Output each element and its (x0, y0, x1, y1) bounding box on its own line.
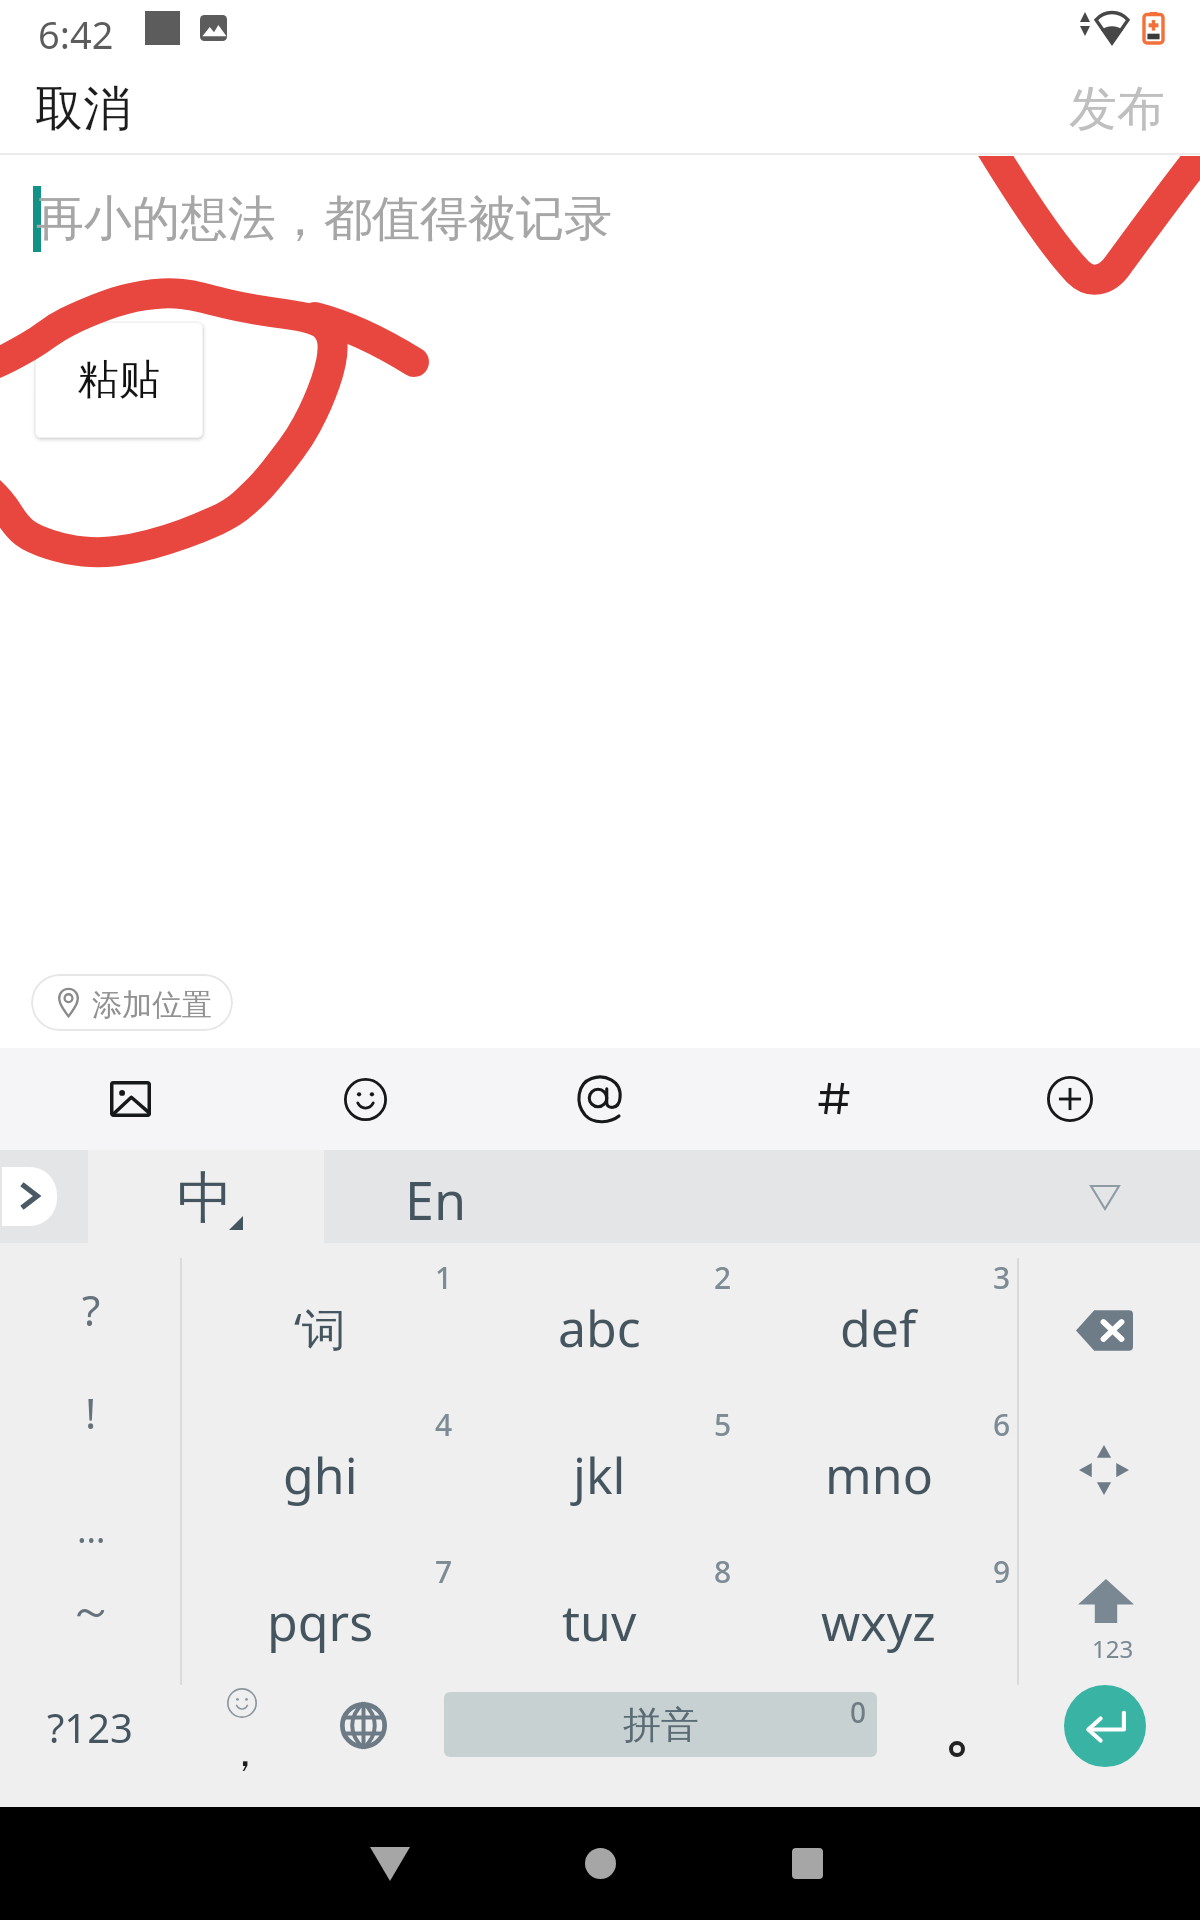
button[interactable]: Enter (1064, 1685, 1146, 1767)
staticText: wxyz (821, 1588, 936, 1656)
button[interactable]: Recents (747, 1807, 867, 1920)
button[interactable]: Switch language (305, 1684, 421, 1807)
button[interactable]: ‘词 (180, 1254, 460, 1401)
staticText: 再小的想法，都值得被记录 (36, 189, 612, 249)
staticText: … (77, 1505, 106, 1554)
staticText: 2 (714, 1257, 732, 1298)
button[interactable]: ?123 (10, 1684, 180, 1807)
staticText: ～ (68, 1582, 114, 1640)
button[interactable]: Comma and emoji (182, 1684, 302, 1807)
staticText: ? (82, 1281, 101, 1338)
button[interactable]: Expand keyboard (2, 1167, 57, 1226)
button[interactable]: Move cursor (1020, 1403, 1198, 1533)
staticText: ， (224, 1726, 266, 1779)
button[interactable]: 中 (88, 1150, 324, 1243)
button[interactable]: tuv (460, 1548, 739, 1695)
button[interactable]: def (739, 1254, 1018, 1401)
button[interactable]: ～ (2, 1561, 180, 1661)
staticText: ghi (283, 1441, 358, 1509)
button[interactable]: Back (330, 1807, 450, 1920)
staticText: 添加位置 (92, 986, 212, 1024)
staticText: En (405, 1164, 467, 1235)
button[interactable]: ? (2, 1259, 180, 1359)
staticText: jkl (573, 1441, 626, 1509)
staticText: tuv (562, 1588, 637, 1656)
staticText: 8 (714, 1551, 732, 1592)
staticText: 6 (993, 1404, 1011, 1445)
button[interactable]: pqrs (180, 1548, 460, 1695)
staticText: ‘词 (294, 1298, 346, 1358)
staticText: 拼音 (623, 1701, 699, 1749)
staticText: 粘贴 (78, 354, 160, 406)
button[interactable]: 拼音 (444, 1692, 877, 1757)
button[interactable]: Full stop (900, 1684, 1015, 1807)
button[interactable]: ! (2, 1362, 180, 1462)
staticText: ! (85, 1384, 97, 1441)
staticText: abc (558, 1294, 641, 1362)
button[interactable]: 取消 (0, 62, 166, 155)
staticText: 0 (850, 1693, 867, 1731)
staticText: 6:42 (38, 8, 114, 60)
staticText: mno (825, 1441, 933, 1509)
staticText: pqrs (267, 1588, 374, 1656)
button[interactable]: En (318, 1150, 554, 1243)
staticText: 5 (714, 1404, 732, 1445)
button[interactable]: Add topic (783, 1048, 885, 1150)
staticText: 中 (177, 1163, 233, 1234)
staticText: 4 (435, 1404, 453, 1445)
button[interactable]: ghi (180, 1401, 460, 1548)
button[interactable]: Hide keyboard (1065, 1162, 1155, 1232)
button[interactable]: … (2, 1479, 180, 1579)
button[interactable]: Add image (79, 1048, 181, 1150)
button[interactable]: Emoji (314, 1048, 416, 1150)
staticText: def (840, 1294, 917, 1362)
staticText: 7 (435, 1551, 453, 1592)
staticText: 1 (435, 1257, 453, 1298)
button[interactable]: Delete (1020, 1265, 1198, 1395)
button[interactable]: mno (739, 1401, 1018, 1548)
staticText: 取消 (35, 79, 131, 139)
button[interactable]: wxyz (739, 1548, 1018, 1695)
staticText: 9 (993, 1551, 1011, 1592)
staticText: 3 (993, 1257, 1011, 1298)
button[interactable]: 添加位置 (31, 974, 233, 1031)
staticText: 发布 (1069, 79, 1165, 139)
button[interactable]: abc (460, 1254, 739, 1401)
button[interactable]: Mention someone (549, 1048, 651, 1150)
button[interactable]: jkl (460, 1401, 739, 1548)
button[interactable]: 发布 (1034, 62, 1200, 155)
button[interactable]: Numbers (1020, 1543, 1198, 1673)
staticText: 123 (1092, 1632, 1134, 1665)
button[interactable]: More (1019, 1048, 1121, 1150)
button[interactable]: 粘贴 (35, 322, 203, 438)
staticText: ?123 (47, 1700, 133, 1754)
button[interactable]: Home (540, 1807, 660, 1920)
